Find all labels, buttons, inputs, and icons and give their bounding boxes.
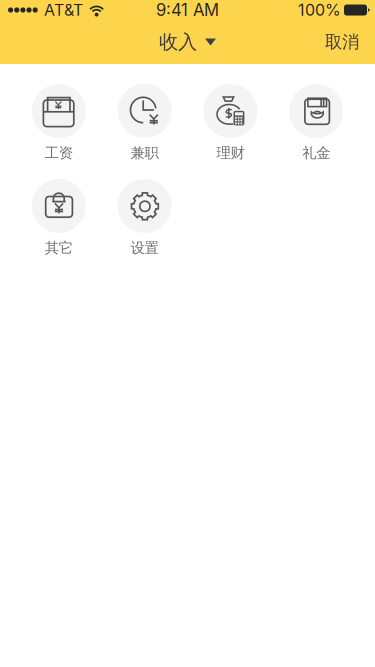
button[interactable]: 设置 [102,179,187,274]
staticText: 100% [298,0,341,20]
staticText: 设置 [131,239,159,257]
staticText: 工资 [45,144,73,162]
button[interactable]: 取消 [309,20,375,64]
button[interactable]: 兼职 [102,84,187,179]
button[interactable]: 工资 [16,84,102,179]
staticText: 礼金 [302,144,330,162]
staticText: 9:41 AM [156,0,219,20]
button[interactable]: 其它 [16,179,102,274]
button[interactable]: 收入 [147,20,228,64]
staticText: AT&T [44,0,83,20]
staticText: 其它 [45,239,73,257]
staticText: 收入 [159,30,197,54]
button[interactable]: 礼金 [273,84,359,179]
staticText: 取消 [325,31,359,53]
staticText: 兼职 [131,144,159,162]
button[interactable]: 理财 [187,84,273,179]
staticText: 理财 [216,144,244,162]
